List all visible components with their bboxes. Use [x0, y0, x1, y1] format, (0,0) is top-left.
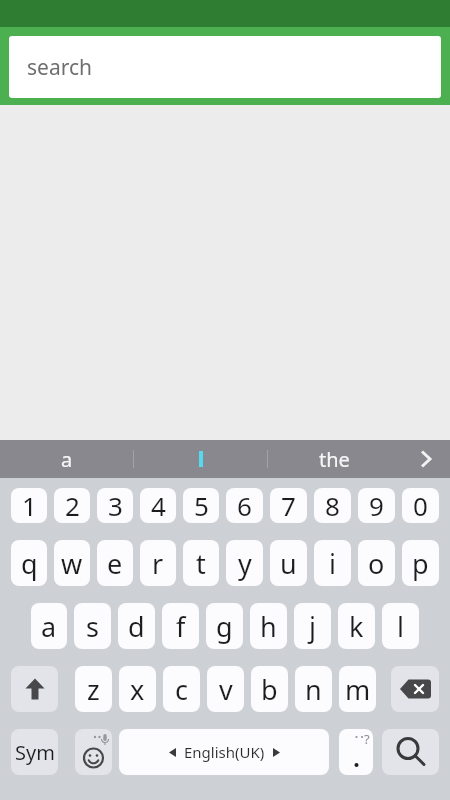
button[interactable]: j — [294, 603, 331, 649]
button[interactable]: 2 — [54, 488, 90, 523]
staticText: p — [412, 545, 429, 582]
button[interactable] — [391, 666, 439, 712]
button[interactable]: u — [270, 540, 307, 586]
staticText: 5 — [194, 488, 209, 523]
button[interactable]: d — [118, 603, 155, 649]
staticText: 3 — [108, 488, 123, 523]
staticText: ? — [364, 730, 370, 748]
staticText: 7 — [281, 488, 296, 523]
button[interactable]: h — [250, 603, 287, 649]
staticText: 8 — [325, 488, 340, 523]
button[interactable]: q — [11, 540, 47, 586]
staticText: i — [329, 545, 336, 582]
button[interactable]: 8 — [314, 488, 351, 523]
button[interactable]: z — [75, 666, 112, 712]
button[interactable]: m — [339, 666, 376, 712]
staticText: c — [175, 671, 188, 708]
button[interactable] — [382, 729, 439, 775]
button[interactable]: e — [97, 540, 133, 586]
staticText: 0 — [413, 488, 428, 523]
staticText: 6 — [237, 488, 252, 523]
staticText: 9 — [369, 488, 384, 523]
staticText: k — [349, 608, 364, 645]
button[interactable]: 0 — [402, 488, 439, 523]
button[interactable]: i — [314, 540, 351, 586]
button[interactable]: p — [402, 540, 439, 586]
staticText: j — [309, 608, 316, 645]
staticText: x — [130, 671, 145, 708]
staticText: 2 — [65, 488, 80, 523]
staticText: g — [216, 608, 233, 645]
staticText: d — [128, 608, 145, 645]
staticText: 4 — [151, 488, 166, 523]
staticText: q — [21, 545, 38, 582]
staticText: r — [152, 545, 164, 582]
button[interactable]: Sym — [11, 729, 58, 775]
staticText: a — [61, 446, 73, 473]
button[interactable] — [401, 440, 450, 478]
staticText: b — [261, 671, 278, 708]
staticText: m — [345, 671, 371, 708]
button[interactable]: a — [0, 440, 133, 478]
button[interactable]: 1 — [11, 488, 47, 523]
staticText: y — [238, 545, 252, 582]
button[interactable]: x — [119, 666, 156, 712]
button[interactable]: 6 — [226, 488, 263, 523]
staticText: Sym — [15, 739, 55, 766]
button[interactable]: the — [268, 440, 401, 478]
button[interactable]: v — [207, 666, 244, 712]
staticText: z — [87, 671, 100, 708]
staticText: a — [41, 608, 57, 645]
button[interactable]: t — [183, 540, 219, 586]
button[interactable]: search — [9, 36, 441, 98]
button[interactable]: b — [251, 666, 288, 712]
staticText: English(UK) — [184, 742, 265, 762]
button[interactable]: g — [206, 603, 243, 649]
staticText: search — [27, 53, 92, 82]
button[interactable]: k — [338, 603, 375, 649]
staticText: e — [107, 545, 123, 582]
staticText: the — [319, 446, 350, 473]
button[interactable]: f — [162, 603, 199, 649]
button[interactable] — [11, 666, 58, 712]
button[interactable]: s — [74, 603, 111, 649]
staticText: h — [260, 608, 277, 645]
button[interactable]: 5 — [183, 488, 219, 523]
button[interactable] — [75, 729, 112, 775]
button[interactable]: o — [358, 540, 395, 586]
button[interactable]: w — [54, 540, 90, 586]
staticText: w — [61, 545, 83, 582]
staticText: n — [305, 671, 322, 708]
staticText: s — [86, 608, 99, 645]
button[interactable]: English(UK) — [119, 729, 329, 775]
button[interactable]: c — [163, 666, 200, 712]
staticText: l — [397, 608, 404, 645]
button[interactable]: l — [382, 603, 419, 649]
staticText: v — [219, 671, 233, 708]
button[interactable]: r — [140, 540, 176, 586]
button[interactable]: y — [226, 540, 263, 586]
button[interactable]: 4 — [140, 488, 176, 523]
button[interactable] — [134, 440, 267, 478]
button[interactable]: 7 — [270, 488, 307, 523]
staticText: 1 — [22, 488, 37, 523]
staticText: t — [196, 545, 206, 582]
button[interactable]: n — [295, 666, 332, 712]
button[interactable]: ? — [339, 729, 373, 775]
button[interactable]: 3 — [97, 488, 133, 523]
staticText: f — [176, 608, 186, 645]
staticText: u — [280, 545, 297, 582]
button[interactable]: 9 — [358, 488, 395, 523]
staticText: o — [368, 545, 385, 582]
button[interactable]: a — [31, 603, 67, 649]
